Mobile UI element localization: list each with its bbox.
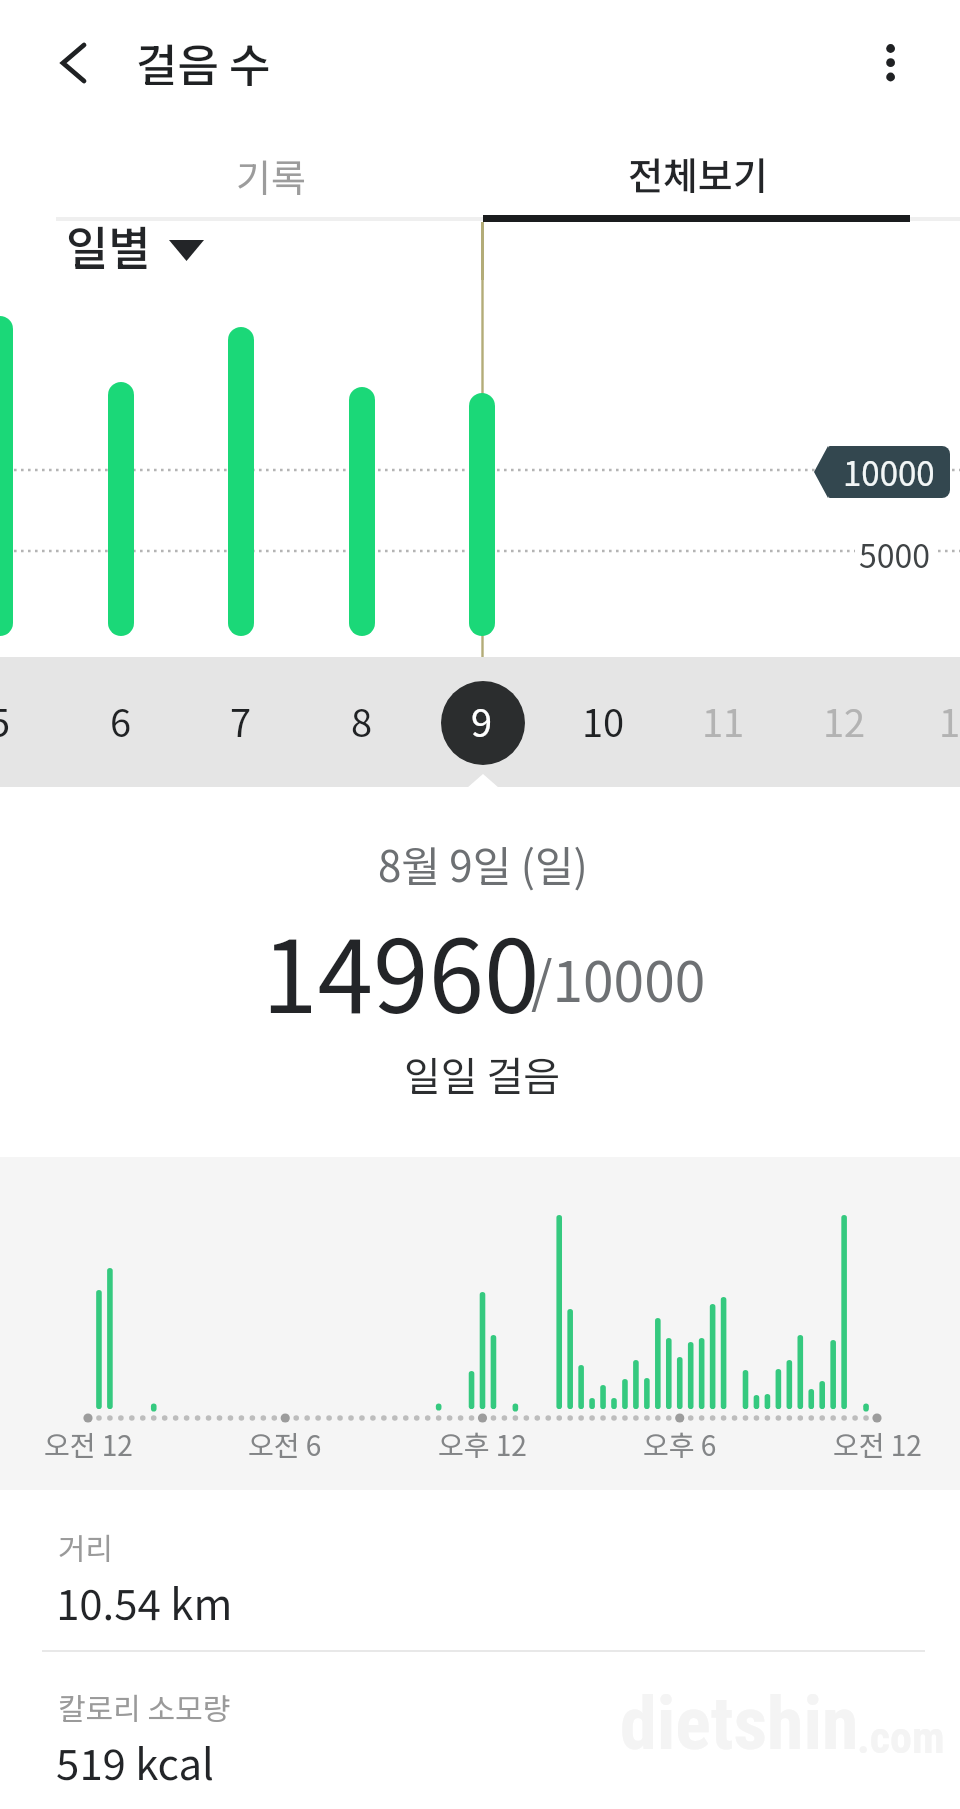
button[interactable]: 7	[191, 657, 291, 787]
button[interactable]: 6	[71, 657, 171, 787]
staticText: 10.54 km	[56, 1571, 233, 1632]
button[interactable]: 거리	[0, 1500, 960, 1650]
staticText: 5000	[859, 531, 931, 577]
staticText: 11	[702, 693, 745, 748]
staticText: 519 kcal	[56, 1731, 214, 1792]
staticText: 8	[351, 693, 373, 748]
staticText: 오전 6	[248, 1424, 322, 1465]
staticText: 9	[471, 693, 493, 748]
button[interactable]: 일별	[66, 212, 204, 270]
button[interactable]: 12	[794, 657, 894, 787]
staticText: /10000	[531, 938, 706, 1018]
staticText: 13	[939, 693, 960, 748]
button[interactable]: 전체보기	[483, 130, 910, 216]
staticText: 5	[0, 693, 11, 748]
button[interactable]: More options	[855, 28, 925, 104]
staticText: dietshin	[620, 1680, 859, 1767]
button[interactable]: 기록	[56, 132, 483, 218]
staticText: 전체보기	[628, 146, 768, 201]
button[interactable]: 8	[312, 657, 412, 787]
staticText: 일별	[66, 212, 151, 270]
staticText: 오전 12	[44, 1424, 133, 1465]
staticText: 일일 걸음	[404, 1045, 561, 1103]
staticText: 칼로리 소모량	[58, 1685, 231, 1728]
button[interactable]: 11	[673, 657, 773, 787]
staticText: 12	[823, 693, 866, 748]
button[interactable]: 13	[910, 657, 960, 787]
button[interactable]: 10	[553, 657, 653, 787]
staticText: 오전 12	[833, 1424, 922, 1465]
button[interactable]: Back	[28, 28, 118, 104]
button[interactable]: 칼로리 소모량	[0, 1660, 960, 1809]
staticText: 10	[582, 693, 625, 748]
staticText: 걸음 수	[136, 30, 271, 95]
button[interactable]: 5	[0, 657, 50, 787]
staticText: 7	[230, 693, 252, 748]
staticText: 6	[110, 693, 132, 748]
staticText: 기록	[236, 148, 306, 203]
staticText: 오후 12	[438, 1424, 527, 1465]
staticText: 거리	[58, 1525, 114, 1568]
staticText: 8월 9일 (일)	[378, 833, 588, 894]
staticText: 오후 6	[643, 1424, 717, 1465]
staticText: .com	[857, 1712, 945, 1764]
staticText: 10000	[843, 448, 935, 496]
button[interactable]: 9	[432, 657, 532, 787]
staticText: 14960	[262, 897, 540, 1019]
